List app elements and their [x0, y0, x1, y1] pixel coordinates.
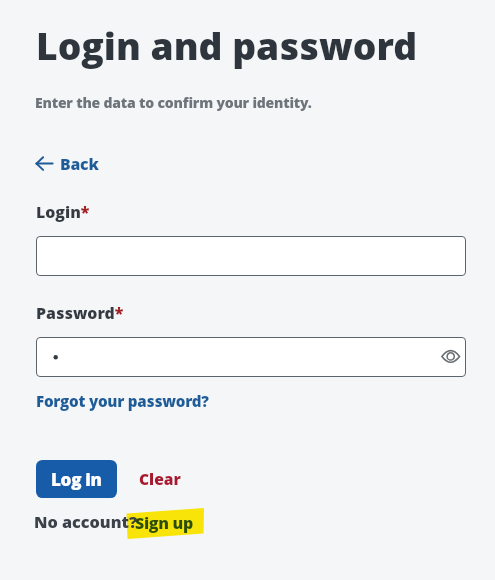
button[interactable]: Clear: [139, 468, 181, 489]
staticText: Log in: [51, 468, 102, 491]
button[interactable]: Forgot your password?: [36, 391, 209, 412]
button[interactable]: Sign up: [135, 512, 193, 534]
staticText: No account?: [34, 511, 138, 533]
button[interactable]: Log in: [36, 460, 117, 498]
button[interactable]: [36, 236, 466, 276]
staticText: Login*: [36, 201, 90, 223]
staticText: Enter the data to confirm your identity.: [35, 93, 312, 112]
button[interactable]: [36, 337, 466, 377]
staticText: Password*: [36, 302, 124, 324]
staticText: Login and password: [36, 20, 418, 71]
staticText: Back: [60, 153, 99, 175]
button[interactable]: Back: [34, 152, 102, 174]
